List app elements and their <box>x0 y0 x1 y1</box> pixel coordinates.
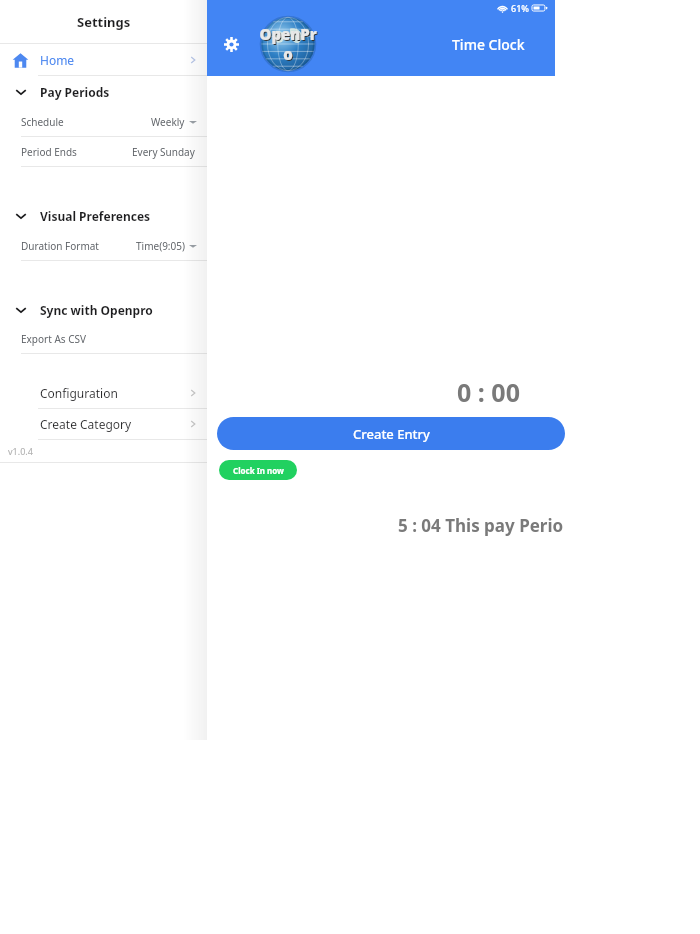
button[interactable]: Settings <box>215 28 247 60</box>
button[interactable]: Create Category <box>0 409 207 439</box>
staticText: 0 : 00 <box>457 375 520 409</box>
staticText: Weekly <box>151 115 185 129</box>
button[interactable]: Configuration <box>0 378 207 408</box>
button[interactable]: Duration Format <box>0 231 207 260</box>
staticText: Sync with Openpro <box>40 302 153 318</box>
staticText: Export As CSV <box>21 332 86 346</box>
staticText: Visual Preferences <box>40 208 151 224</box>
staticText: Configuration <box>40 385 118 401</box>
button[interactable]: Period Ends <box>0 137 207 166</box>
staticText: Home <box>40 52 75 68</box>
button[interactable]: Export As CSV <box>0 325 207 353</box>
staticText: Create Category <box>40 416 132 432</box>
staticText: Time(9:05) <box>136 239 185 253</box>
button[interactable]: Visual Preferences <box>0 200 207 231</box>
button[interactable]: Create Entry <box>217 417 565 450</box>
staticText: Settings <box>77 13 131 31</box>
staticText: OpenPro <box>258 25 320 65</box>
staticText: Period Ends <box>21 145 77 159</box>
button[interactable]: Pay Periods <box>0 76 207 107</box>
staticText: Every Sunday <box>132 145 195 159</box>
staticText: Time Clock <box>452 35 525 54</box>
staticText: Schedule <box>21 115 64 129</box>
staticText: Pay Periods <box>40 84 110 100</box>
staticText: OpenPro <box>257 24 319 64</box>
button[interactable]: Sync with Openpro <box>0 294 207 325</box>
button[interactable]: Schedule <box>0 107 207 136</box>
staticText: Create Entry <box>353 425 430 443</box>
staticText: v1.0.4 <box>8 445 33 457</box>
button[interactable]: Home <box>0 44 207 75</box>
staticText: 61% <box>511 2 529 14</box>
button[interactable]: Clock In now <box>219 460 297 480</box>
staticText: 5 : 04 This pay Period <box>398 514 563 537</box>
staticText: Clock In now <box>233 465 284 476</box>
staticText: Duration Format <box>21 239 99 253</box>
